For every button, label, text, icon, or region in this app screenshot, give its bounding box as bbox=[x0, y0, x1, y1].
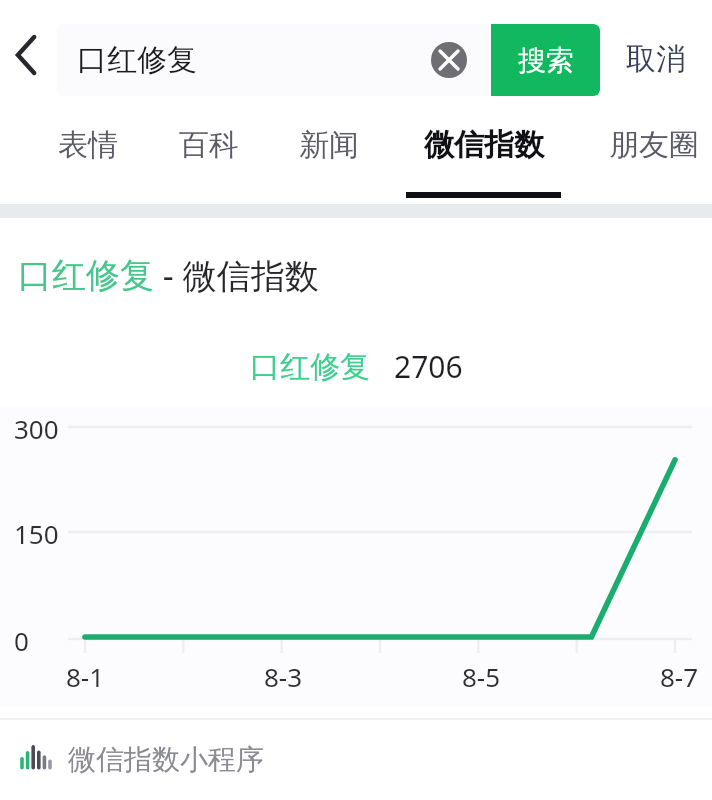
button[interactable]: 微信指数 bbox=[406, 110, 561, 204]
staticText: 300 bbox=[14, 411, 59, 446]
staticText: 新闻 bbox=[299, 126, 359, 164]
staticText: 朋友圈 bbox=[609, 126, 699, 164]
staticText: 150 bbox=[14, 516, 59, 551]
staticText: 微信指数小程序 bbox=[68, 742, 264, 777]
staticText: 口红修复 bbox=[18, 254, 154, 297]
button[interactable]: Clear text bbox=[426, 37, 472, 83]
button[interactable]: 口红修复 bbox=[57, 24, 600, 96]
staticText: 表情 bbox=[58, 126, 118, 164]
staticText: 口红修复 bbox=[77, 41, 197, 79]
staticText: 0 bbox=[14, 623, 29, 658]
staticText: 搜索 bbox=[518, 43, 574, 78]
button[interactable]: 微信指数小程序 bbox=[16, 742, 264, 777]
staticText: 百科 bbox=[179, 126, 239, 164]
staticText: 口红修复 bbox=[250, 348, 370, 386]
staticText: 8-1 bbox=[66, 659, 105, 694]
staticText: - 微信指数 bbox=[154, 252, 319, 298]
staticText: 微信指数 bbox=[424, 126, 544, 164]
staticText: 8-7 bbox=[660, 659, 699, 694]
button[interactable]: 搜索 bbox=[491, 24, 600, 96]
button[interactable]: 新闻 bbox=[298, 110, 360, 204]
staticText: 2706 bbox=[394, 346, 463, 387]
staticText: 8-3 bbox=[264, 659, 303, 694]
button[interactable]: 朋友圈 bbox=[606, 110, 702, 204]
staticText: 8-5 bbox=[462, 659, 501, 694]
button[interactable]: 口红修复 bbox=[18, 252, 712, 298]
button[interactable]: 百科 bbox=[178, 110, 240, 204]
staticText: 取消 bbox=[626, 40, 686, 78]
button[interactable]: 取消 bbox=[608, 28, 704, 90]
button[interactable]: 表情 bbox=[56, 110, 120, 204]
button[interactable]: Back bbox=[2, 28, 52, 82]
